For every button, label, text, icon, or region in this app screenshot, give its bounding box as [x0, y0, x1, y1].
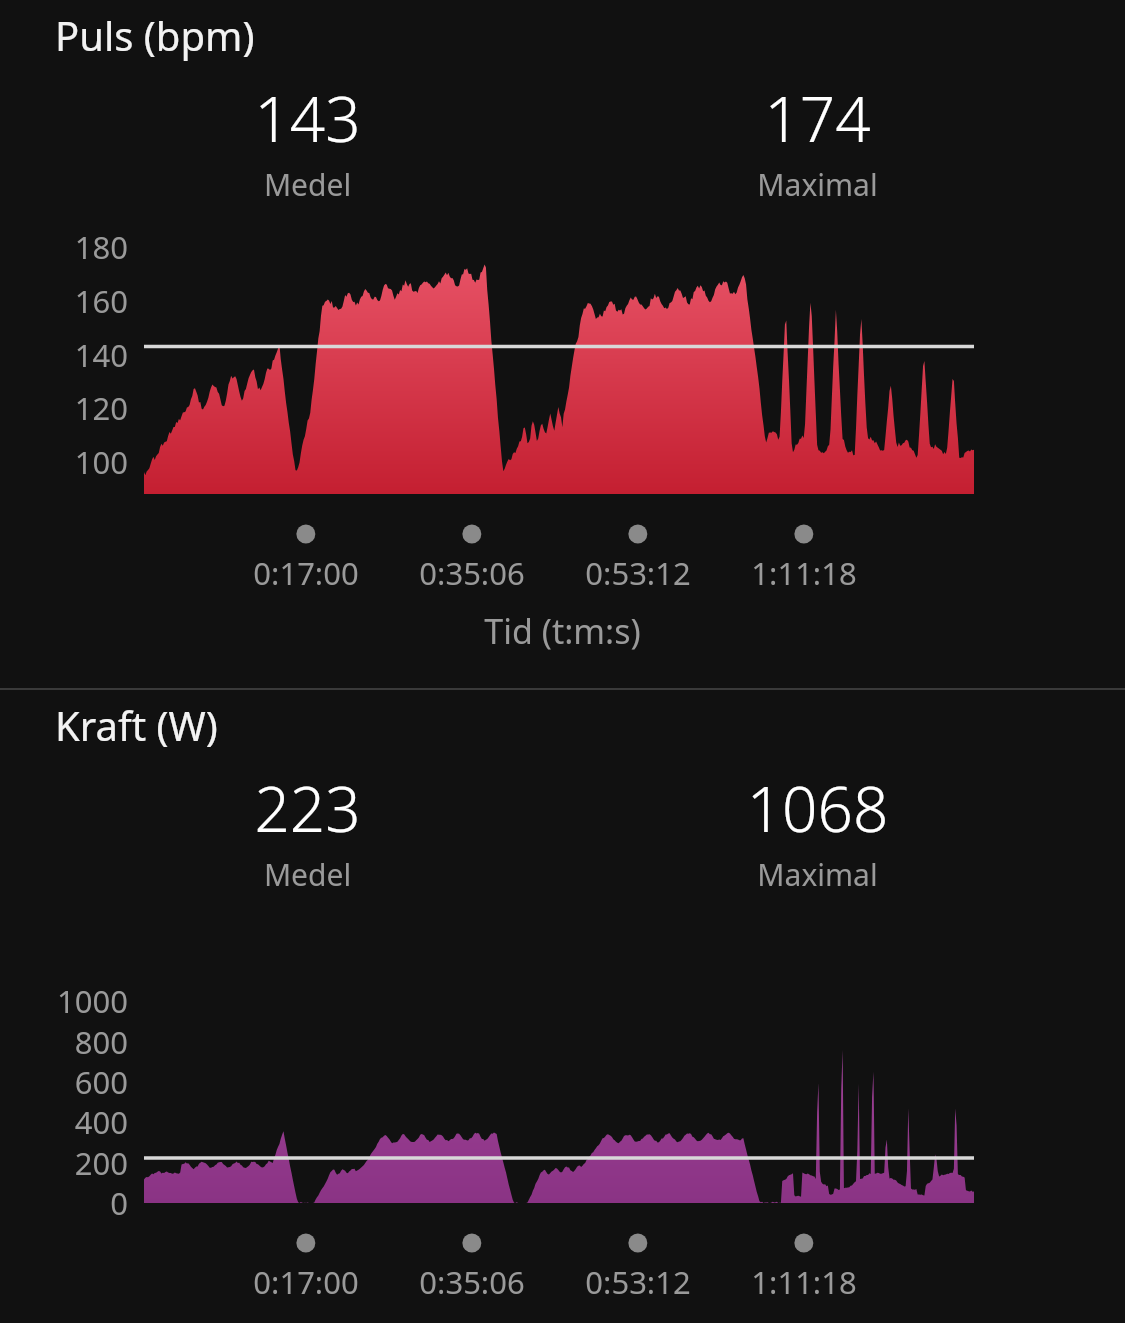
- staticText: 223: [155, 766, 460, 850]
- staticText: 600: [0, 1061, 128, 1103]
- staticText: 174: [665, 76, 970, 160]
- staticText: 0: [0, 1182, 128, 1224]
- staticText: 0:35:06: [362, 1261, 582, 1303]
- button[interactable]: 143: [155, 76, 460, 205]
- button[interactable]: 174: [665, 76, 970, 205]
- staticText: 1:11:18: [694, 1261, 914, 1303]
- staticText: 0:17:00: [196, 552, 416, 594]
- staticText: 200: [0, 1142, 128, 1184]
- staticText: 100: [0, 441, 128, 483]
- button[interactable]: [0, 690, 1125, 1323]
- staticText: 0:53:12: [528, 1261, 748, 1303]
- button[interactable]: 1068: [665, 766, 970, 895]
- staticText: 120: [0, 387, 128, 429]
- button[interactable]: Kraft (W): [55, 698, 218, 752]
- staticText: 0:35:06: [362, 552, 582, 594]
- staticText: 180: [0, 226, 128, 268]
- staticText: 140: [0, 334, 128, 376]
- staticText: 160: [0, 280, 128, 322]
- staticText: Medel: [155, 164, 460, 205]
- staticText: Maximal: [665, 164, 970, 205]
- staticText: Medel: [155, 854, 460, 895]
- staticText: 1068: [665, 766, 970, 850]
- button[interactable]: Puls (bpm): [55, 8, 255, 62]
- staticText: 800: [0, 1021, 128, 1063]
- button[interactable]: [0, 0, 1125, 688]
- staticText: 1000: [0, 980, 128, 1022]
- staticText: 400: [0, 1101, 128, 1143]
- staticText: 0:53:12: [528, 552, 748, 594]
- button[interactable]: 223: [155, 766, 460, 895]
- staticText: 0:17:00: [196, 1261, 416, 1303]
- staticText: 143: [155, 76, 460, 160]
- staticText: 1:11:18: [694, 552, 914, 594]
- staticText: Maximal: [665, 854, 970, 895]
- staticText: Tid (t:m:s): [0, 608, 1125, 654]
